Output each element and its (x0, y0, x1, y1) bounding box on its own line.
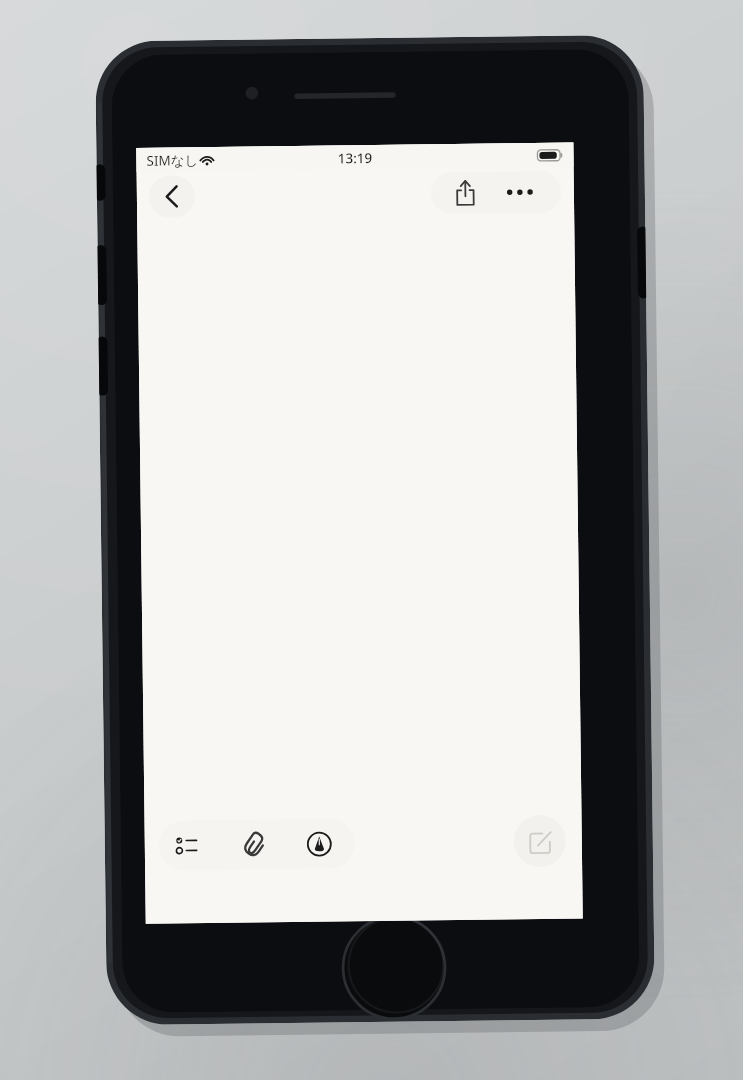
staticText: 13:19 (136, 146, 574, 170)
button[interactable]: Markup (293, 821, 345, 866)
staticText: SIMなし (146, 151, 199, 170)
button[interactable]: Share (441, 172, 489, 214)
button[interactable]: Attach (229, 822, 281, 867)
button[interactable]: Back (149, 175, 195, 218)
button[interactable]: Checklist (163, 823, 215, 868)
button[interactable]: New note (513, 815, 566, 867)
button[interactable]: More options (496, 171, 544, 213)
